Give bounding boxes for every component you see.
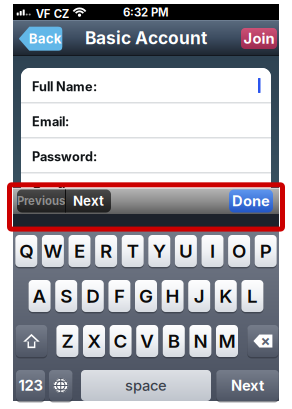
staticText: 123	[18, 377, 42, 394]
staticText: G	[139, 285, 153, 307]
button[interactable]: Delete	[247, 325, 278, 357]
button[interactable]: L	[241, 280, 263, 312]
staticText: J	[194, 285, 205, 307]
button[interactable]: Numbers	[16, 370, 45, 401]
staticText: Z	[61, 330, 73, 352]
staticText: A	[33, 285, 47, 307]
button[interactable]: E	[68, 235, 90, 267]
button[interactable]: I	[201, 235, 223, 267]
staticText: Join	[243, 30, 274, 47]
staticText: X	[87, 330, 100, 352]
staticText: F	[114, 285, 125, 307]
staticText: O	[232, 240, 246, 262]
staticText: L	[247, 285, 258, 307]
button[interactable]: M	[216, 325, 238, 357]
button[interactable]: Done	[229, 189, 273, 212]
button[interactable]: S	[55, 280, 77, 312]
staticText: U	[179, 240, 193, 262]
staticText: I	[210, 240, 215, 262]
button[interactable]: F	[108, 280, 130, 312]
staticText: N	[193, 330, 207, 352]
staticText: H	[166, 285, 180, 307]
staticText: S	[60, 285, 72, 307]
button[interactable]: C	[110, 325, 132, 357]
staticText: Full Name:	[32, 79, 97, 94]
staticText: Previous	[17, 194, 65, 208]
button[interactable]: B	[163, 325, 185, 357]
staticText: T	[127, 240, 139, 262]
staticText: P	[260, 240, 272, 262]
staticText: 6:32 PM	[123, 6, 169, 19]
staticText: C	[114, 330, 128, 352]
button[interactable]: T	[122, 235, 144, 267]
staticText: space	[125, 377, 167, 394]
staticText: ×	[260, 332, 270, 349]
staticText: Email:	[32, 114, 69, 129]
button[interactable]: R	[95, 235, 117, 267]
staticText: Password:	[32, 149, 97, 164]
button[interactable]: H	[162, 280, 184, 312]
button[interactable]: N	[189, 325, 211, 357]
button[interactable]: Next	[216, 370, 279, 401]
button[interactable]: Previous	[17, 189, 65, 212]
staticText: V	[140, 330, 154, 352]
staticText: B	[168, 330, 180, 352]
button[interactable]: O	[228, 235, 250, 267]
button[interactable]: G	[135, 280, 157, 312]
button[interactable]: Join	[241, 28, 277, 49]
button[interactable]: Next	[66, 189, 111, 212]
button[interactable]: Back	[18, 27, 62, 51]
staticText: D	[86, 285, 99, 307]
button[interactable]: A	[29, 280, 51, 312]
button[interactable]: Z	[56, 325, 78, 357]
button[interactable]: X	[83, 325, 105, 357]
button[interactable]: V	[136, 325, 158, 357]
button[interactable]: K	[215, 280, 237, 312]
staticText: K	[219, 285, 232, 307]
staticText: Next	[73, 193, 104, 209]
staticText: Y	[153, 240, 166, 262]
button[interactable]: P	[255, 235, 277, 267]
button[interactable]: Q	[15, 235, 37, 267]
staticText: R	[100, 240, 112, 262]
staticText: E	[74, 240, 85, 262]
button[interactable]: Y	[148, 235, 170, 267]
button[interactable]: J	[188, 280, 210, 312]
button[interactable]: Switch keyboard	[49, 370, 72, 401]
staticText: Next	[231, 377, 264, 394]
button[interactable]: U	[175, 235, 197, 267]
staticText: Confirm:	[32, 184, 86, 199]
staticText: Q	[19, 240, 33, 262]
button[interactable]: D	[82, 280, 104, 312]
button[interactable]: W	[42, 235, 64, 267]
staticText: Back	[29, 31, 62, 47]
staticText: W	[43, 240, 62, 262]
staticText: VF CZ	[36, 7, 70, 21]
staticText: Basic Account	[85, 27, 207, 48]
staticText: Done	[232, 192, 270, 210]
button[interactable]: Shift	[16, 325, 47, 357]
button[interactable]: space	[81, 370, 211, 401]
staticText: M	[218, 330, 235, 352]
